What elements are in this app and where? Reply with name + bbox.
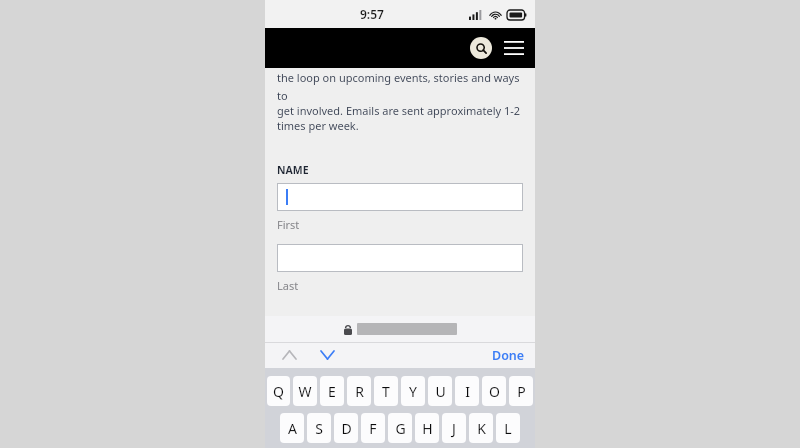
button[interactable] — [277, 183, 523, 211]
button[interactable]: S — [307, 413, 331, 443]
button[interactable]: J — [442, 413, 466, 443]
button[interactable] — [277, 244, 523, 272]
button[interactable]: L — [496, 413, 520, 443]
staticText: W — [298, 382, 312, 401]
staticText: Last — [277, 278, 299, 293]
staticText: U — [435, 382, 446, 401]
button[interactable]: A — [280, 413, 304, 443]
button[interactable]: Done — [492, 347, 525, 364]
button[interactable]: O — [482, 376, 506, 406]
button[interactable] — [277, 342, 393, 366]
button[interactable]: I — [455, 376, 479, 406]
staticText: 9:57 — [360, 6, 384, 22]
staticText: Done — [492, 347, 525, 364]
button[interactable]: K — [469, 413, 493, 443]
staticText: G — [395, 419, 406, 438]
button[interactable]: Q — [267, 376, 290, 406]
button[interactable]: G — [388, 413, 412, 443]
staticText: get involved. Emails are sent approximat… — [277, 103, 521, 118]
staticText: J — [452, 419, 456, 438]
staticText: E — [328, 382, 336, 401]
button[interactable]: P — [509, 376, 533, 406]
button[interactable]: Y — [401, 376, 425, 406]
button[interactable]: U — [428, 376, 452, 406]
button[interactable]: H — [415, 413, 439, 443]
button[interactable]: Next field — [317, 345, 337, 365]
staticText: D — [341, 419, 352, 438]
staticText: (REQUIRED) — [316, 324, 366, 336]
button[interactable]: T — [374, 376, 398, 406]
staticText: L — [504, 419, 512, 438]
staticText: F — [369, 419, 377, 438]
staticText: A — [288, 419, 297, 438]
staticText: the loop on upcoming events, stories and… — [277, 70, 523, 103]
staticText: O — [489, 382, 500, 401]
button[interactable]: W — [293, 376, 317, 406]
staticText: P — [517, 382, 526, 401]
staticText: T — [382, 382, 390, 401]
button[interactable]: E — [320, 376, 344, 406]
staticText: NAME — [277, 163, 309, 177]
button[interactable]: R — [347, 376, 371, 406]
staticText: times per week. — [277, 118, 359, 133]
button[interactable]: D — [334, 413, 358, 443]
staticText: H — [422, 419, 433, 438]
staticText: Y — [409, 382, 417, 401]
staticText: Q — [273, 382, 284, 401]
staticText: First — [277, 217, 300, 232]
button[interactable]: Search — [470, 37, 492, 59]
button[interactable]: Menu — [503, 38, 525, 58]
button[interactable]: Previous field — [279, 345, 299, 365]
button[interactable]: F — [361, 413, 385, 443]
staticText: I — [465, 382, 470, 401]
staticText: K — [477, 419, 486, 438]
staticText: S — [315, 419, 323, 438]
staticText: R — [355, 382, 364, 401]
